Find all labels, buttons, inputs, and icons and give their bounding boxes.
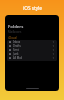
- staticText: Sent: [13, 48, 19, 52]
- staticText: Junk: [13, 52, 19, 56]
- staticText: iOS style: [23, 5, 42, 11]
- button[interactable]: Sent: [7, 48, 57, 52]
- staticText: Drafts: [13, 44, 21, 48]
- staticText: Folders: [8, 24, 24, 30]
- staticText: Inbox: [13, 40, 21, 44]
- button[interactable]: Junk: [7, 52, 57, 56]
- staticText: Mailboxes: [8, 30, 22, 34]
- button[interactable]: Drafts: [7, 44, 57, 48]
- staticText: All Mail: [13, 56, 23, 60]
- button[interactable]: Inbox: [7, 40, 57, 44]
- staticText: iCloud: [8, 36, 17, 40]
- button[interactable]: All Mail: [7, 56, 57, 60]
